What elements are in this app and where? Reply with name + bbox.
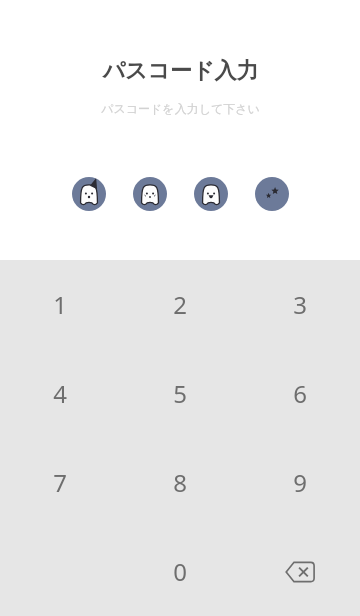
button[interactable]: 2 bbox=[120, 260, 240, 349]
button[interactable]: 1 bbox=[0, 260, 120, 349]
button[interactable]: 7 bbox=[0, 438, 120, 527]
staticText: パスコード入力 bbox=[102, 57, 259, 85]
button[interactable]: Backspace bbox=[240, 527, 360, 616]
staticText: 8 bbox=[173, 466, 187, 499]
button[interactable]: 9 bbox=[240, 438, 360, 527]
staticText: 0 bbox=[173, 555, 187, 588]
staticText: 4 bbox=[53, 377, 67, 410]
button[interactable]: 3 bbox=[240, 260, 360, 349]
staticText: 1 bbox=[53, 288, 67, 321]
staticText: 2 bbox=[173, 288, 187, 321]
staticText: 3 bbox=[293, 288, 307, 321]
button[interactable]: 6 bbox=[240, 349, 360, 438]
button[interactable]: 8 bbox=[120, 438, 240, 527]
staticText: 5 bbox=[173, 377, 187, 410]
button[interactable]: 4 bbox=[0, 349, 120, 438]
staticText: パスコードを入力して下さい bbox=[101, 101, 260, 116]
button[interactable]: 0 bbox=[120, 527, 240, 616]
staticText: 6 bbox=[293, 377, 307, 410]
button[interactable]: 5 bbox=[120, 349, 240, 438]
staticText: 7 bbox=[53, 466, 67, 499]
staticText: 9 bbox=[293, 466, 307, 499]
